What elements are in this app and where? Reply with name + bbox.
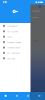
button[interactable]: Tab [11, 92, 22, 100]
staticText: Cards [7, 35, 12, 38]
staticText: Bill Payment [7, 51, 20, 54]
button[interactable]: Tab [0, 92, 11, 100]
button[interactable]: Cards [0, 34, 30, 39]
staticText: Dashboard [7, 24, 17, 27]
staticText: Manage Cards [7, 46, 20, 49]
staticText: Settings [7, 57, 15, 60]
button[interactable]: Bill Payment [0, 50, 30, 56]
button[interactable]: Dashboard [0, 23, 30, 29]
button[interactable]: Settings [0, 56, 30, 61]
staticText: My Account [7, 30, 18, 33]
button[interactable]: Transfer Funds [0, 39, 30, 45]
staticText: 9:41 [3, 0, 7, 4]
button[interactable]: Tab [34, 92, 45, 100]
staticText: Transfer Funds [7, 41, 21, 43]
button[interactable]: My Account [0, 29, 30, 34]
button[interactable]: Manage Cards [0, 45, 30, 50]
button[interactable]: Tab [22, 92, 34, 100]
